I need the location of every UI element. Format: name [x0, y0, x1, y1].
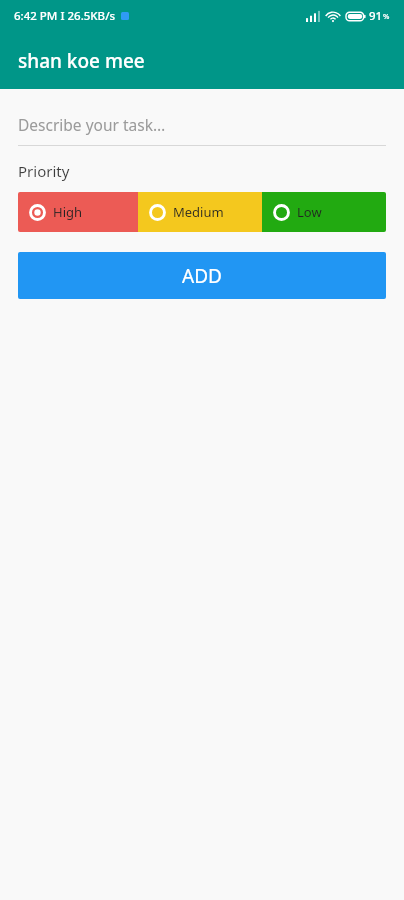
staticText: Low [297, 203, 322, 221]
staticText: % [383, 11, 390, 21]
staticText: High [53, 203, 83, 221]
button[interactable]: Describe your task… [18, 109, 386, 146]
button[interactable]: High [18, 192, 138, 232]
button[interactable]: Low [262, 192, 386, 232]
staticText: 6:42 PM I 26.5KB/s [14, 8, 116, 24]
staticText: ADD [182, 263, 222, 289]
button[interactable]: ADD [18, 252, 386, 299]
staticText: Describe your task… [18, 114, 166, 135]
staticText: Priority [18, 161, 70, 181]
staticText: shan koe mee [18, 48, 145, 74]
staticText: Medium [173, 203, 224, 221]
button[interactable]: Medium [138, 192, 262, 232]
staticText: 91 [369, 8, 383, 24]
